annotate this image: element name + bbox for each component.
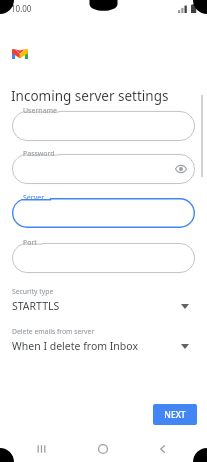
staticText: Username (23, 106, 58, 116)
staticText: Delete emails from server (12, 327, 95, 336)
staticText: Server (23, 193, 45, 203)
staticText: STARTTLS (12, 299, 60, 313)
staticText: 10.00 (11, 3, 32, 14)
staticText: Incoming server settings (11, 87, 169, 105)
button[interactable]: Home (92, 438, 114, 460)
button[interactable]: Password (12, 154, 195, 184)
staticText: When I delete from Inbox (12, 339, 138, 353)
staticText: Password (23, 149, 55, 159)
button[interactable]: Server (12, 198, 195, 228)
other: Gmail (12, 47, 28, 59)
button[interactable]: Show password (173, 161, 189, 177)
button[interactable]: Port (12, 243, 195, 273)
button[interactable]: Delete emails from server (0, 326, 207, 362)
staticText: Port (23, 238, 37, 248)
button[interactable]: Recent apps (31, 438, 53, 460)
button[interactable]: Security type (0, 286, 207, 322)
staticText: Security type (12, 287, 54, 296)
staticText: NEXT (164, 409, 186, 421)
button[interactable]: Back (152, 438, 174, 460)
button[interactable]: NEXT (153, 404, 197, 425)
button[interactable]: Username (12, 111, 195, 141)
